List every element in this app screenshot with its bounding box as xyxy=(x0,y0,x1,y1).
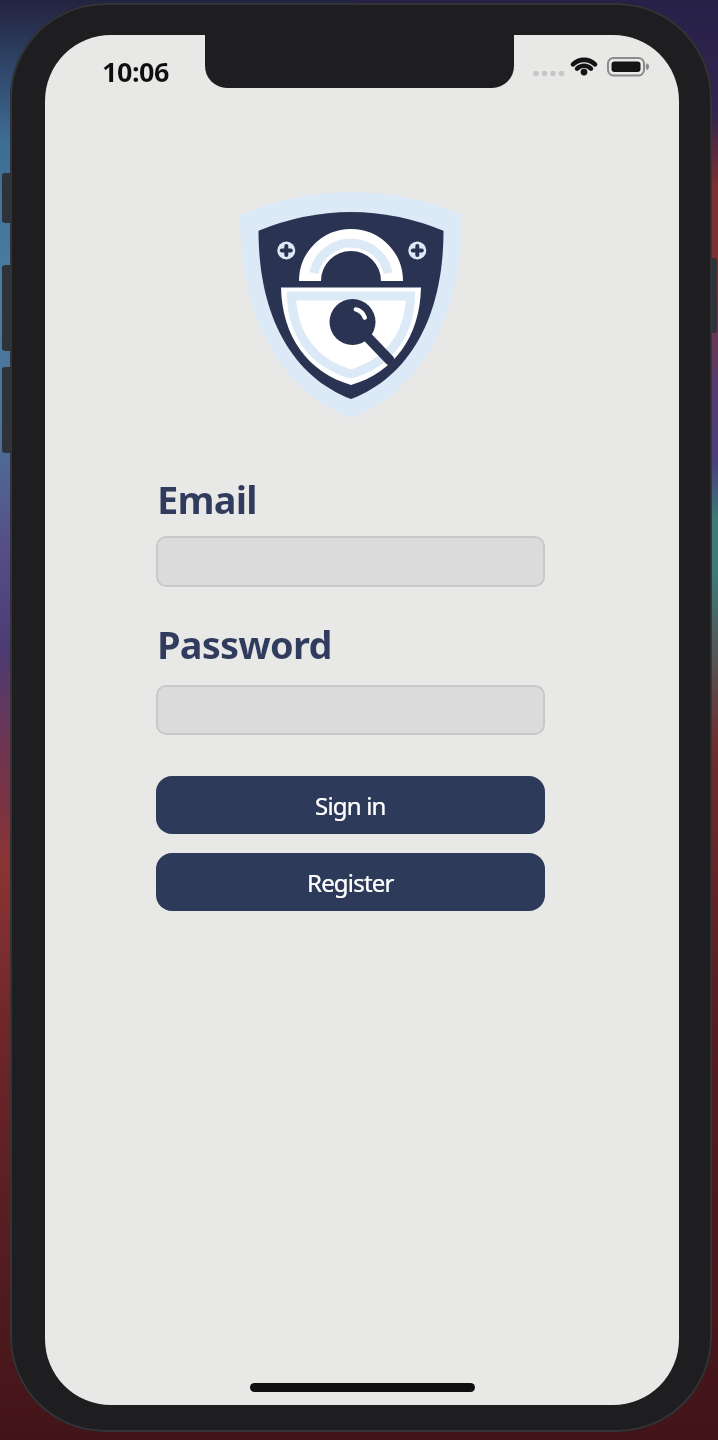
staticText: Sign in xyxy=(315,789,386,822)
staticText: Email xyxy=(157,473,257,525)
button[interactable]: Sign in xyxy=(156,776,545,834)
staticText: Password xyxy=(157,618,332,670)
staticText: 10:06 xyxy=(102,53,169,90)
button[interactable] xyxy=(156,685,545,735)
button[interactable]: Register xyxy=(156,853,545,911)
button[interactable] xyxy=(156,536,545,587)
staticText: Register xyxy=(307,866,394,899)
